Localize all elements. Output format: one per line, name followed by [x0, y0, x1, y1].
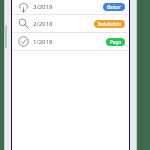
staticText: Pago — [110, 39, 121, 45]
staticText: 3/2018 — [33, 3, 53, 11]
button[interactable]: Em análise — [12, 15, 129, 32]
other: Em análise — [18, 18, 29, 29]
staticText: Indeferido — [98, 21, 121, 27]
other: Pago — [18, 36, 29, 47]
button[interactable]: Download — [12, 0, 129, 14]
other: Download — [18, 2, 29, 13]
staticText: 2/2018 — [33, 20, 53, 28]
staticText: Baixar — [107, 4, 121, 10]
button[interactable]: Indeferido — [94, 20, 125, 28]
button[interactable]: Pago — [12, 33, 129, 50]
staticText: 1/2018 — [33, 38, 53, 46]
button[interactable]: Pago — [106, 38, 125, 46]
button[interactable]: Baixar — [103, 3, 125, 11]
